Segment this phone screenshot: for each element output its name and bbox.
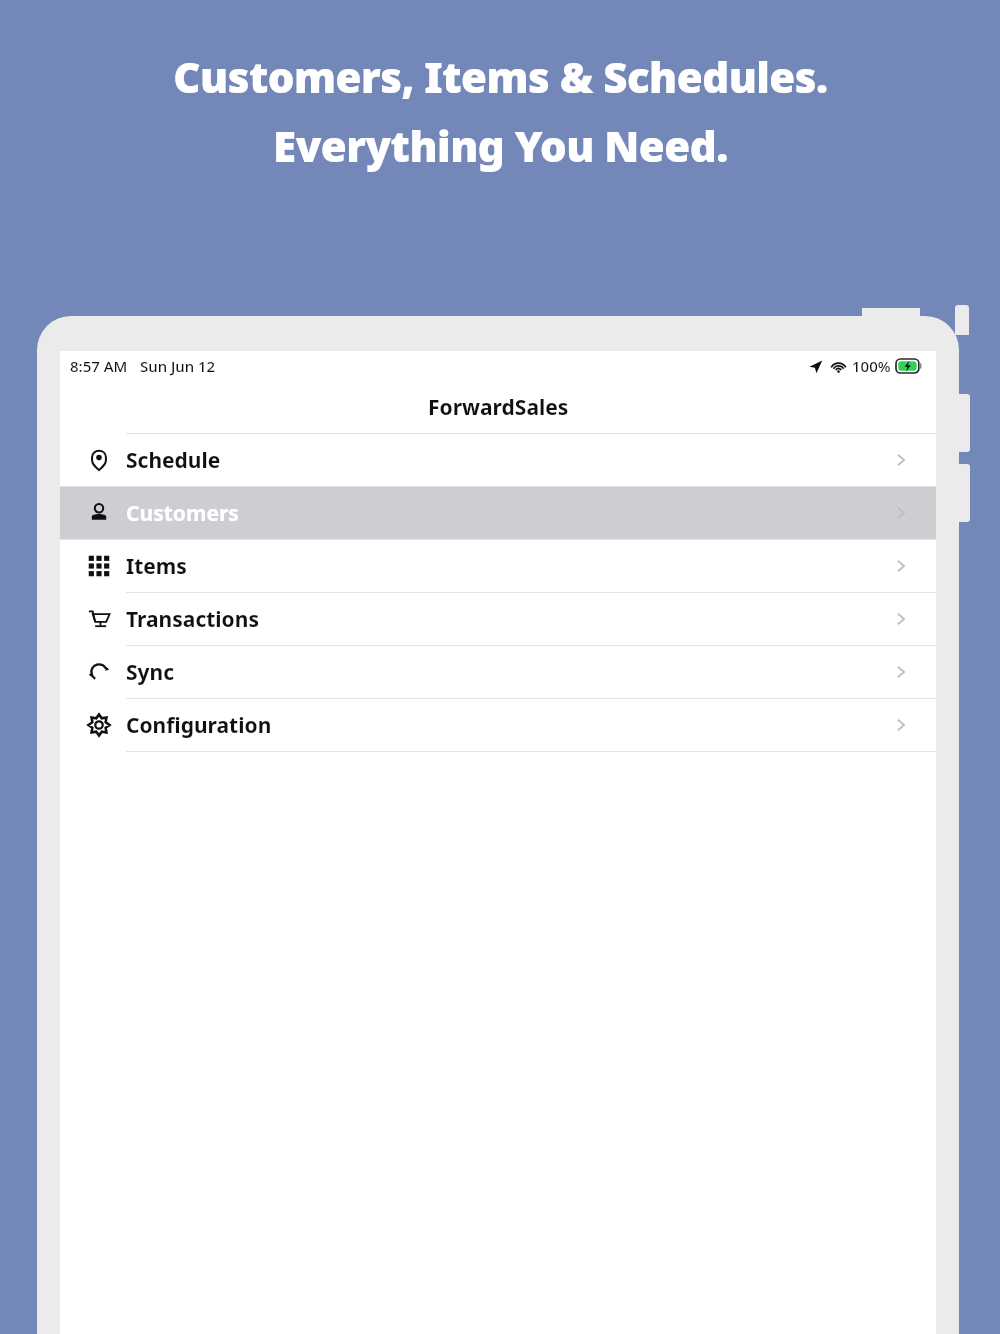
button[interactable]: Transactions bbox=[60, 593, 936, 645]
button[interactable]: Sync bbox=[60, 646, 936, 698]
staticText: 100% bbox=[852, 356, 891, 376]
staticText: 8:57 AM bbox=[70, 356, 128, 376]
button[interactable]: Configuration bbox=[60, 699, 936, 751]
staticText: Customers, Items & Schedules. bbox=[173, 48, 828, 105]
staticText: Schedule bbox=[126, 446, 221, 475]
staticText: Sun Jun 12 bbox=[140, 356, 216, 376]
staticText: Configuration bbox=[126, 711, 272, 740]
button[interactable]: Items bbox=[60, 540, 936, 592]
staticText: Transactions bbox=[126, 605, 259, 634]
staticText: ForwardSales bbox=[428, 393, 569, 422]
button[interactable]: Customers bbox=[60, 487, 936, 539]
staticText: Everything You Need. bbox=[273, 117, 728, 174]
staticText: Customers bbox=[126, 499, 239, 528]
staticText: Sync bbox=[126, 658, 175, 687]
button[interactable]: Schedule bbox=[60, 434, 936, 486]
staticText: Items bbox=[126, 552, 187, 581]
